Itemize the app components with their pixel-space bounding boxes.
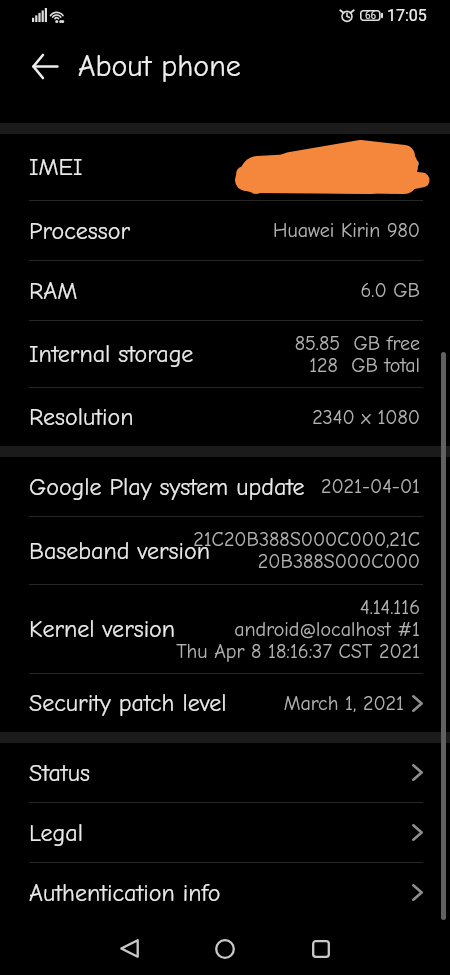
- staticText: Authentication info: [29, 879, 221, 907]
- button[interactable]: Security patch level: [0, 674, 450, 732]
- button[interactable]: Recent apps: [273, 922, 369, 975]
- button[interactable]: Resolution: [0, 388, 450, 446]
- staticText: 66: [365, 10, 377, 21]
- button[interactable]: RAM: [0, 261, 450, 320]
- staticText: Kernel version: [29, 615, 176, 643]
- button[interactable]: Baseband version: [0, 517, 450, 584]
- button[interactable]: Google Play system update: [0, 457, 450, 516]
- button[interactable]: Authentication info: [0, 863, 450, 922]
- staticText: IMEI: [29, 153, 83, 181]
- staticText: Internal storage: [29, 340, 194, 368]
- button[interactable]: Status: [0, 743, 450, 802]
- staticText: 2021-04-01: [320, 475, 420, 498]
- staticText: 85.85 GB free 128 GB total: [294, 332, 420, 377]
- staticText: Security patch level: [29, 689, 227, 717]
- button[interactable]: IMEI: [0, 134, 450, 200]
- staticText: 21C20B388S000C000,21C 20B388S000C000: [193, 528, 420, 573]
- staticText: March 1, 2021: [283, 692, 404, 715]
- staticText: 17:05: [387, 6, 427, 25]
- button[interactable]: Back: [81, 922, 177, 975]
- staticText: 2340 x 1080: [312, 406, 420, 429]
- staticText: Google Play system update: [29, 473, 305, 501]
- staticText: Status: [29, 759, 90, 787]
- button[interactable]: Kernel version: [0, 585, 450, 673]
- staticText: Baseband version: [29, 537, 210, 565]
- staticText: Huawei Kirin 980: [273, 219, 420, 242]
- staticText: RAM: [29, 277, 78, 305]
- staticText: About phone: [78, 49, 241, 84]
- staticText: 4.14.116 android@localhost #1 Thu Apr 8 …: [176, 596, 420, 663]
- button[interactable]: Back: [21, 42, 69, 90]
- button[interactable]: Home: [177, 922, 273, 975]
- button[interactable]: Internal storage: [0, 321, 450, 387]
- staticText: 867300000000092: [248, 156, 420, 179]
- staticText: Legal: [29, 819, 83, 847]
- staticText: 6.0 GB: [360, 279, 420, 302]
- staticText: Resolution: [29, 403, 134, 431]
- button[interactable]: Processor: [0, 201, 450, 260]
- staticText: Processor: [29, 217, 130, 245]
- button[interactable]: Legal: [0, 803, 450, 862]
